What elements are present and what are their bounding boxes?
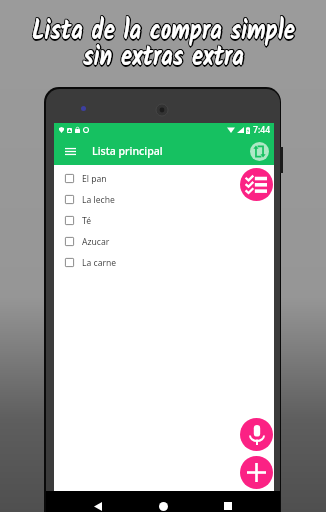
button[interactable]: Show lists — [240, 168, 273, 201]
staticText: Lista de la compra simple — [32, 11, 295, 56]
button[interactable]: Voice input — [240, 418, 273, 451]
button[interactable]: Recent apps — [215, 493, 241, 512]
staticText: sin extras extra — [83, 35, 244, 80]
staticText: sin extras extra — [84, 36, 245, 81]
button[interactable]: La carne — [54, 252, 274, 273]
staticText: sin extras extra — [84, 35, 246, 80]
button[interactable]: La leche — [54, 189, 274, 210]
staticText: Lista de la compra simple — [31, 8, 294, 53]
staticText: sin extras extra — [83, 34, 244, 79]
staticText: sin extras extra — [84, 34, 245, 79]
staticText: Lista de la compra simple — [33, 9, 297, 54]
staticText: sin extras extra — [83, 37, 244, 82]
button[interactable]: El pan — [54, 168, 274, 189]
button[interactable]: Home — [150, 493, 176, 512]
button[interactable]: Sync list — [246, 138, 272, 164]
staticText: Azucar — [82, 236, 110, 248]
staticText: Lista principal — [92, 144, 163, 158]
staticText: sin extras extra — [82, 35, 243, 80]
button[interactable]: Back — [85, 493, 111, 512]
staticText: sin extras extra — [82, 34, 243, 79]
staticText: La carne — [82, 257, 117, 269]
staticText: La leche — [82, 194, 115, 206]
staticText: Lista de la compra simple — [31, 9, 294, 54]
staticText: Lista de la compra simple — [32, 9, 295, 54]
button[interactable]: Té — [54, 210, 274, 231]
button[interactable]: Add item — [240, 456, 273, 489]
button[interactable]: Open navigation menu — [59, 140, 81, 162]
staticText: Lista de la compra simple — [31, 10, 294, 55]
staticText: 7:44 — [253, 124, 271, 136]
staticText: Lista de la compra simple — [33, 10, 296, 55]
staticText: Lista de la compra simple — [32, 8, 295, 53]
staticText: Lista de la compra simple — [33, 8, 296, 53]
staticText: sin extras extra — [82, 36, 243, 81]
button[interactable]: Azucar — [54, 231, 274, 252]
staticText: El pan — [82, 173, 107, 185]
staticText: Té — [82, 215, 92, 227]
